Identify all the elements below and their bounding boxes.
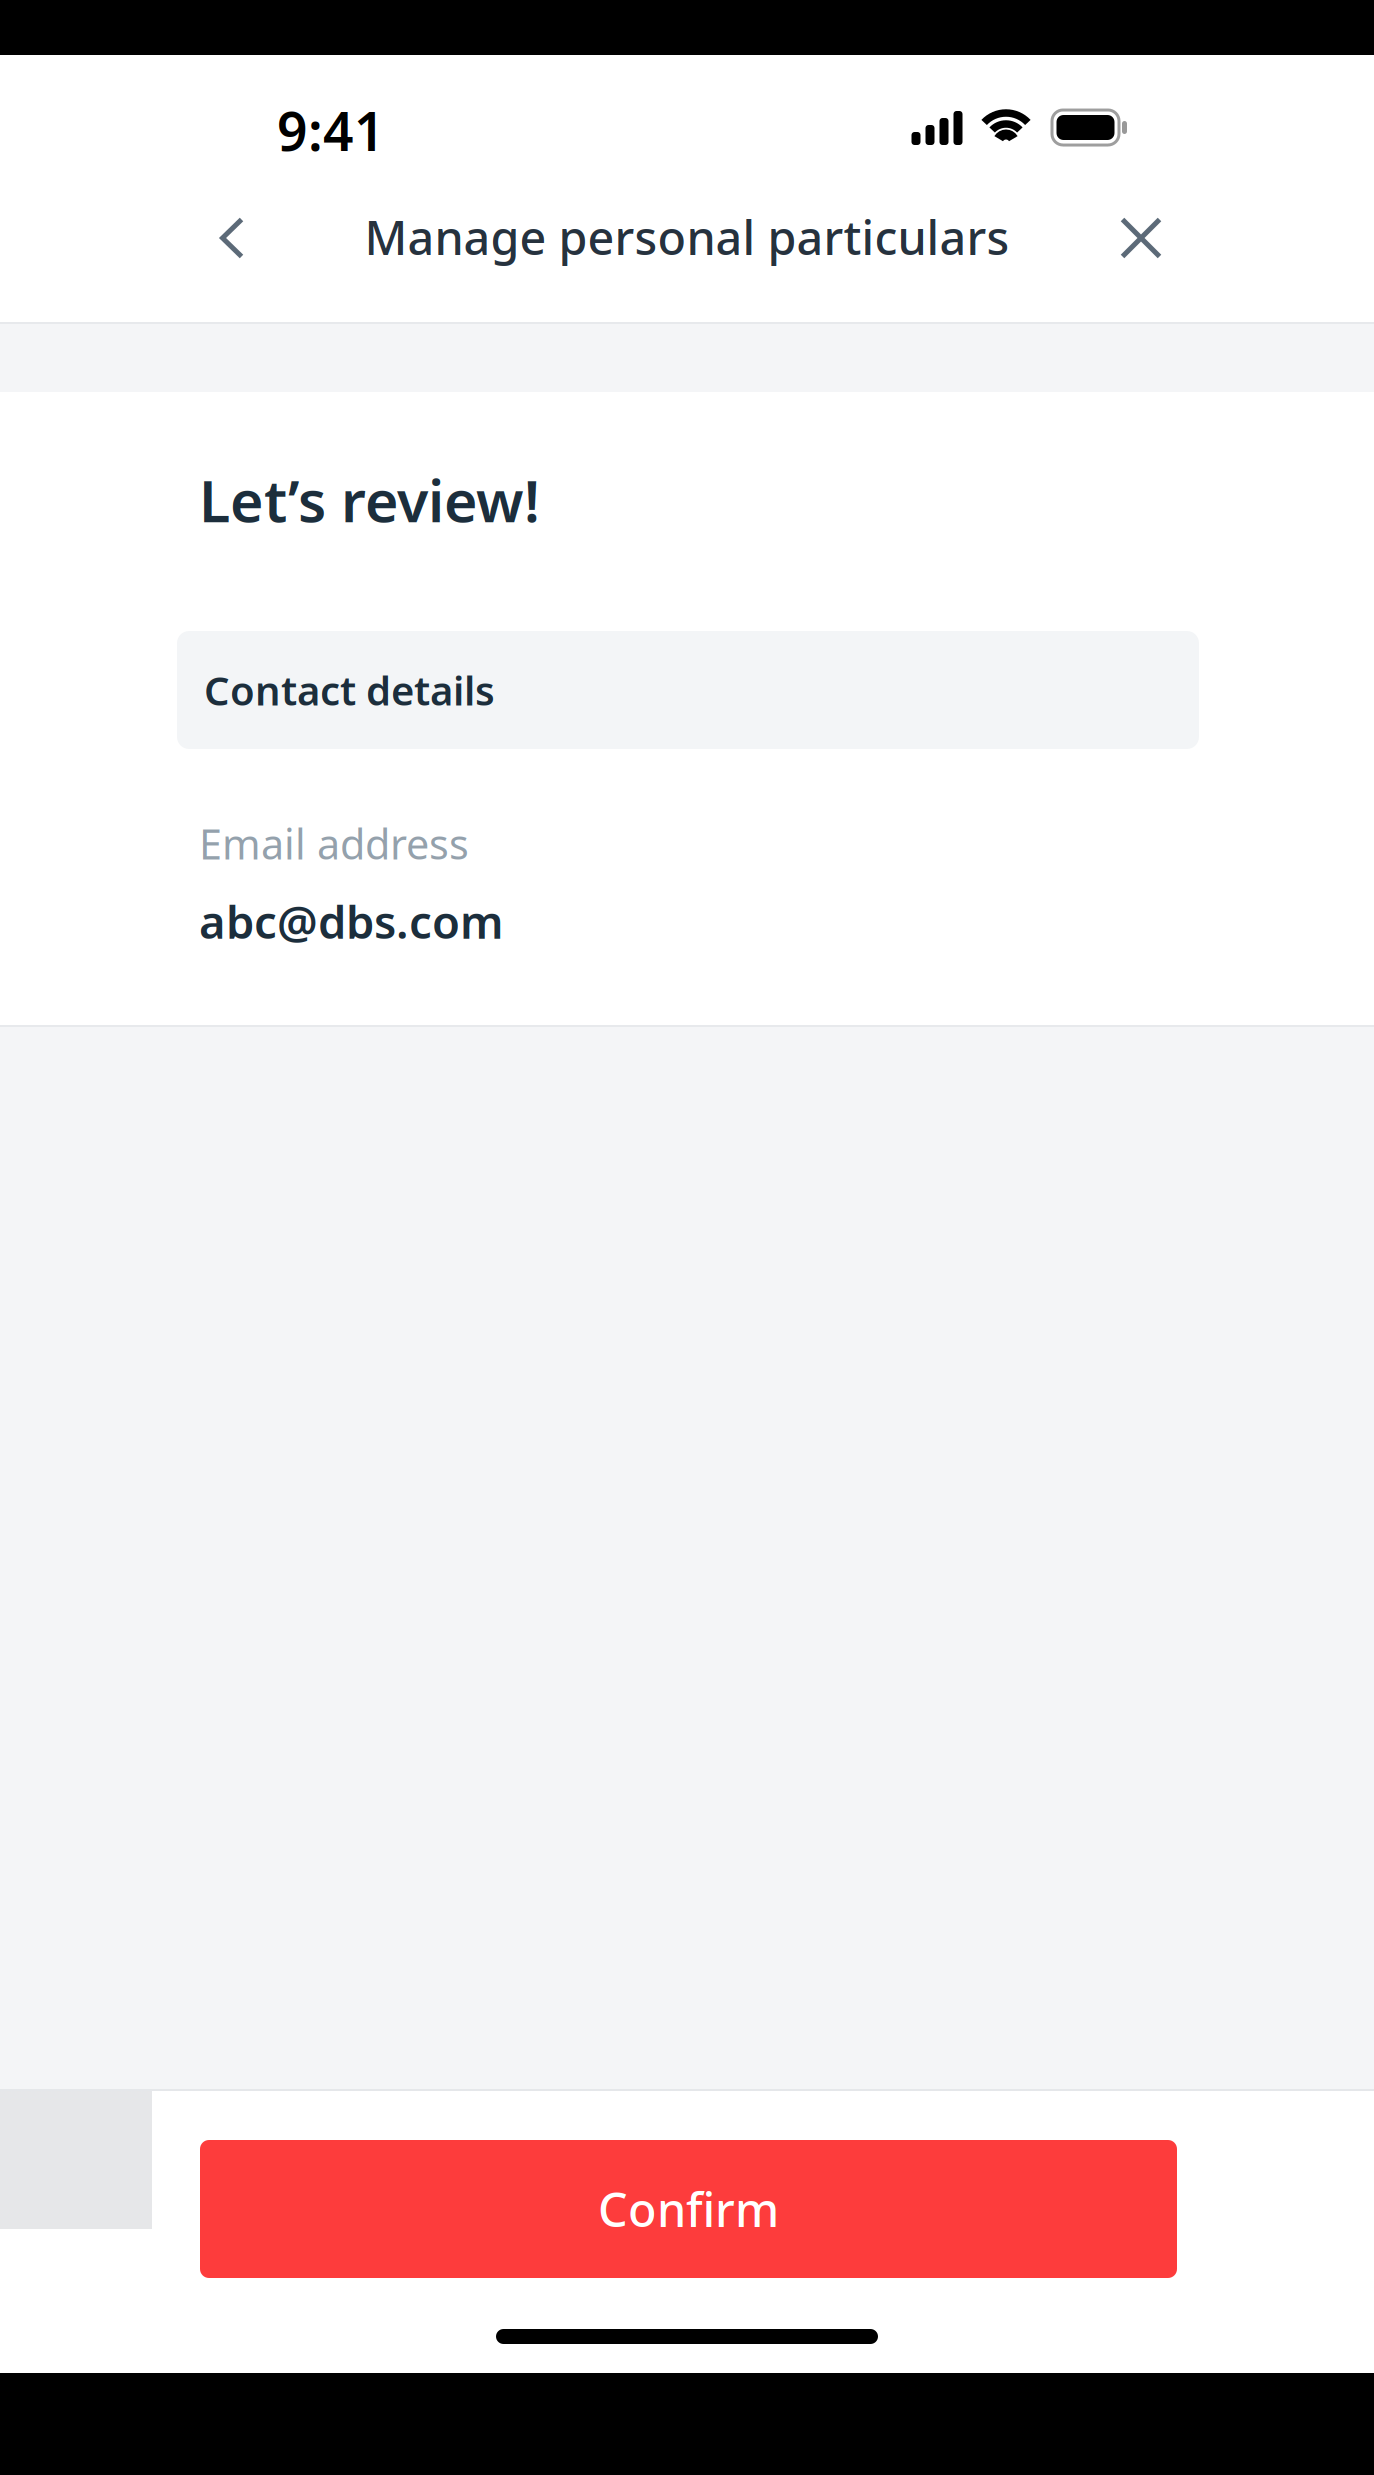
staticText: Manage personal particulars — [364, 206, 1009, 268]
staticText: Confirm — [598, 2178, 779, 2240]
button[interactable]: Close — [1103, 192, 1179, 284]
staticText: 9:41 — [277, 95, 385, 166]
button[interactable]: Back — [194, 192, 270, 284]
staticText: Contact details — [204, 663, 495, 716]
staticText: Let’s review! — [199, 462, 540, 538]
button[interactable]: Confirm — [200, 2140, 1177, 2278]
staticText: abc@dbs.com — [199, 891, 504, 951]
staticText: Email address — [199, 816, 469, 871]
